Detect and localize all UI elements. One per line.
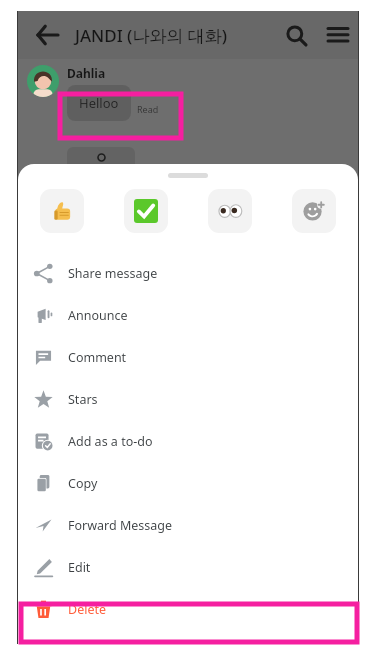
button[interactable]: Search — [272, 11, 320, 59]
button[interactable]: Comment — [18, 336, 358, 378]
button[interactable]: Menu — [314, 11, 362, 59]
staticText: Copy — [68, 475, 98, 492]
staticText: JANDI (나와의 대화) — [75, 24, 228, 47]
staticText: Share message — [68, 265, 158, 282]
button[interactable]: Stars — [18, 378, 358, 420]
button[interactable]: Forward Message — [18, 504, 358, 546]
button[interactable]: Eyes — [208, 189, 252, 233]
button[interactable]: Check — [124, 189, 168, 233]
staticText: Comment — [68, 349, 127, 366]
staticText: Helloo — [79, 94, 119, 112]
button[interactable]: Add reaction — [292, 189, 336, 233]
staticText: Stars — [68, 391, 98, 408]
button[interactable]: Announce — [18, 294, 358, 336]
staticText: Read — [137, 103, 159, 115]
button[interactable]: Edit — [18, 546, 358, 588]
button[interactable]: Share message — [18, 252, 358, 294]
staticText: Edit — [68, 559, 91, 576]
button[interactable]: Add as a to-do — [18, 420, 358, 462]
button[interactable]: Back — [23, 11, 71, 59]
button[interactable]: Delete — [18, 588, 358, 630]
staticText: Dahlia — [67, 65, 106, 81]
button[interactable]: Copy — [18, 462, 358, 504]
staticText: Add as a to-do — [68, 433, 153, 450]
staticText: Delete — [68, 601, 107, 618]
button[interactable]: Thumbs up — [40, 189, 84, 233]
staticText: Announce — [68, 307, 128, 324]
staticText: Forward Message — [68, 517, 173, 534]
